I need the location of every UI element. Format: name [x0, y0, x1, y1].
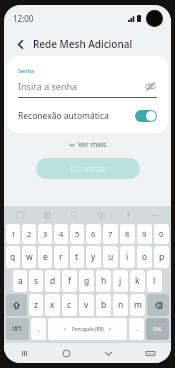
button[interactable]: c — [62, 294, 77, 316]
button[interactable]: r — [54, 246, 68, 268]
button[interactable]: s — [29, 270, 43, 292]
button[interactable]: . — [129, 318, 144, 340]
staticText: 12:00 — [13, 13, 34, 24]
staticText: b — [101, 299, 107, 311]
button[interactable]: Voltar — [12, 36, 28, 52]
button[interactable]: 3 — [38, 224, 52, 244]
button[interactable]: e — [38, 246, 52, 268]
button[interactable]: x — [45, 294, 60, 316]
button[interactable]: 0 — [154, 224, 169, 244]
staticText: 8 — [125, 229, 130, 239]
staticText: Reconexão automática — [18, 110, 135, 122]
button[interactable]: , — [31, 318, 46, 340]
button[interactable]: v — [79, 294, 94, 316]
button[interactable]: a — [13, 270, 27, 292]
button[interactable]: Início — [45, 343, 87, 363]
staticText: y — [91, 251, 96, 263]
button[interactable]: Teclado — [129, 343, 171, 363]
button[interactable]: 6 — [86, 224, 101, 244]
staticText: Ver mais — [78, 140, 107, 150]
button[interactable]: q — [6, 246, 20, 268]
button[interactable]: 2 — [22, 224, 36, 244]
button[interactable]: w — [22, 246, 36, 268]
staticText: h — [101, 275, 107, 287]
staticText: n — [118, 299, 124, 311]
button[interactable]: Espaço, Português (BR) — [48, 318, 127, 340]
button[interactable]: 1 — [6, 224, 20, 244]
staticText: , — [38, 324, 40, 334]
button[interactable]: i — [120, 246, 135, 268]
button[interactable]: g — [79, 270, 94, 292]
staticText: g — [84, 275, 90, 287]
staticText: Insira a senha — [18, 80, 143, 92]
button[interactable]: Pesquisar — [68, 209, 80, 221]
button[interactable]: k — [130, 270, 145, 292]
button[interactable]: 4 — [54, 224, 68, 244]
staticText: m — [134, 299, 142, 311]
staticText: 5 — [75, 229, 80, 239]
button[interactable]: Mostrar senha — [143, 79, 157, 93]
button[interactable]: GIF — [95, 209, 107, 221]
button[interactable]: Mais opções — [149, 209, 161, 221]
button[interactable]: l — [147, 270, 162, 292]
staticText: 4 — [59, 229, 64, 239]
button[interactable]: n — [113, 294, 128, 316]
staticText: w — [26, 251, 33, 263]
button[interactable]: Recentes — [4, 343, 45, 363]
staticText: Rede Mesh Adicional — [33, 37, 133, 51]
staticText: q — [10, 251, 16, 263]
button[interactable]: u — [103, 246, 118, 268]
staticText: › — [109, 324, 112, 334]
staticText: j — [119, 275, 122, 287]
staticText: Senha — [18, 67, 35, 74]
button[interactable]: p — [154, 246, 169, 268]
button[interactable]: f — [62, 270, 77, 292]
staticText: 9 — [142, 229, 147, 239]
staticText: 6 — [91, 229, 96, 239]
staticText: ‹ — [64, 324, 67, 334]
button[interactable]: z — [29, 294, 43, 316]
button[interactable]: Emoji — [14, 209, 26, 221]
button[interactable]: Reconexão automática — [18, 110, 157, 122]
button[interactable]: d — [45, 270, 60, 292]
staticText: 0 — [159, 229, 164, 239]
staticText: 7 — [108, 229, 113, 239]
staticText: e — [43, 251, 48, 263]
button[interactable]: OK — [146, 318, 169, 340]
staticText: l — [153, 275, 156, 287]
button[interactable]: Reconexão automática — [135, 110, 157, 122]
button[interactable]: Apagar — [147, 294, 169, 316]
button[interactable]: Entrada de voz — [122, 209, 134, 221]
button[interactable]: o — [137, 246, 152, 268]
staticText: . — [136, 324, 138, 334]
staticText: c — [67, 299, 72, 311]
button[interactable]: Configurações — [41, 209, 53, 221]
button[interactable]: Ver mais — [4, 140, 171, 150]
button[interactable]: t — [70, 246, 84, 268]
button[interactable]: j — [113, 270, 128, 292]
staticText: !#1 — [12, 324, 23, 334]
button[interactable]: h — [96, 270, 111, 292]
button[interactable]: Conectar — [36, 158, 140, 179]
button[interactable]: Maiúsculas — [6, 294, 27, 316]
staticText: v — [84, 299, 89, 311]
staticText: 3 — [43, 229, 48, 239]
staticText: i — [126, 251, 129, 263]
button[interactable]: y — [86, 246, 101, 268]
button[interactable]: m — [130, 294, 145, 316]
staticText: p — [159, 251, 165, 263]
staticText: f — [68, 275, 71, 287]
staticText: o — [142, 251, 148, 263]
staticText: 1 — [11, 229, 16, 239]
button[interactable]: 8 — [120, 224, 135, 244]
button[interactable]: 5 — [70, 224, 84, 244]
staticText: Conectar — [70, 163, 107, 175]
staticText: x — [50, 299, 55, 311]
button[interactable]: !#1 — [6, 318, 29, 340]
button[interactable]: 9 — [137, 224, 152, 244]
button[interactable]: Ocultar teclado — [87, 343, 129, 363]
button[interactable]: b — [96, 294, 111, 316]
button[interactable]: 7 — [103, 224, 118, 244]
staticText: Português (BR) — [72, 326, 104, 332]
staticText: u — [108, 251, 114, 263]
